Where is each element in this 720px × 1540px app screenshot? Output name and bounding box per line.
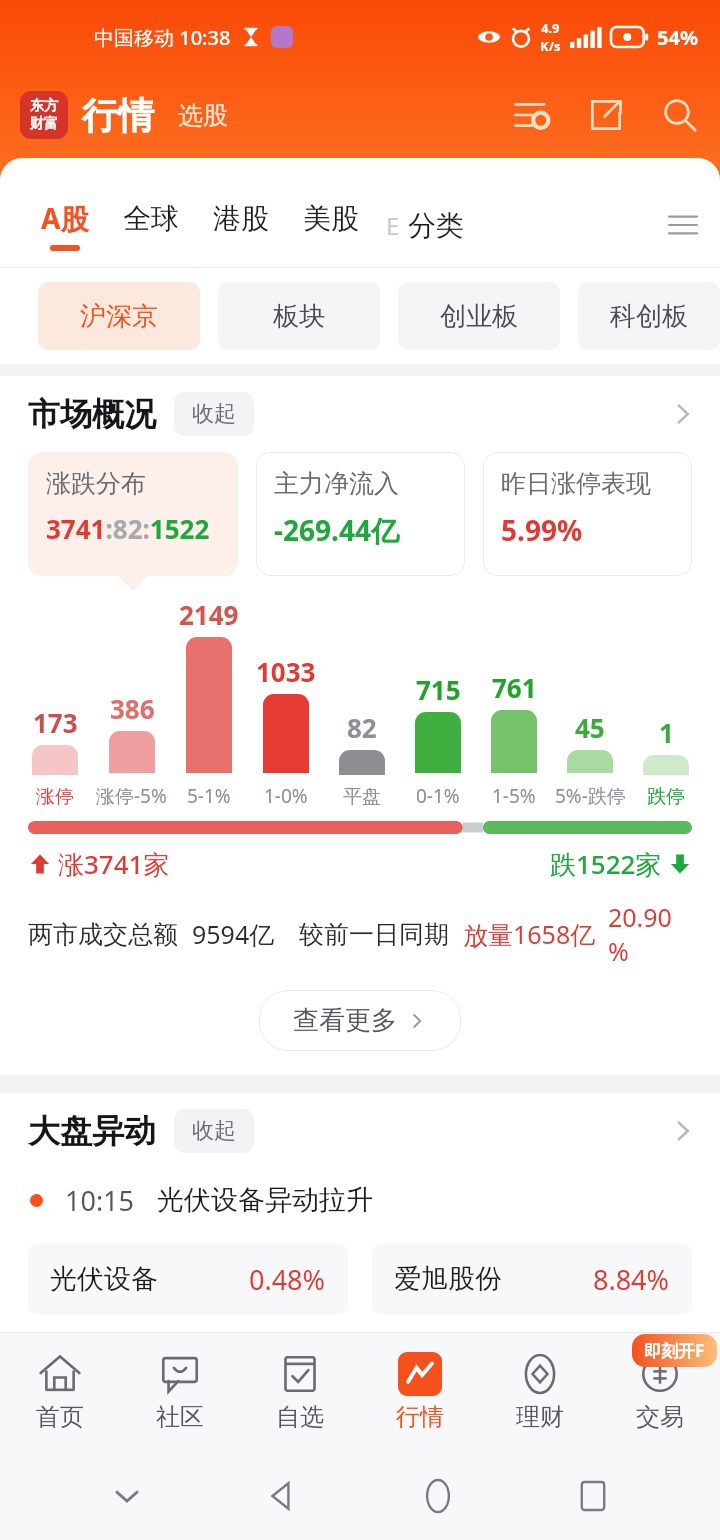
button[interactable]: 美股: [286, 182, 376, 268]
staticText: 收起: [192, 400, 236, 428]
staticText: 较前一日同期: [299, 919, 449, 950]
staticText: 1: [659, 715, 674, 750]
staticText: 0-1%: [416, 783, 460, 809]
button[interactable]: 自选: [240, 1332, 360, 1452]
staticText: 5.99%: [501, 511, 583, 549]
button[interactable]: E: [376, 208, 474, 243]
staticText: 行情: [396, 1402, 444, 1432]
button[interactable]: 10:15: [0, 1169, 720, 1231]
button[interactable]: 收起: [174, 392, 254, 436]
staticText: 东方: [30, 97, 58, 115]
staticText: 715: [416, 672, 461, 707]
button[interactable]: Collapse: [98, 1467, 156, 1525]
staticText: 1-5%: [492, 783, 536, 809]
staticText: 科创板: [610, 300, 688, 333]
staticText: 跌停: [647, 785, 685, 809]
button[interactable]: 科创板: [578, 282, 720, 350]
staticText: 0.48%: [249, 1261, 326, 1298]
staticText: 45: [575, 710, 605, 745]
staticText: 54%: [657, 24, 698, 51]
button[interactable]: 选股: [178, 100, 228, 131]
button[interactable]: A股: [24, 182, 106, 268]
staticText: 涨跌分布: [46, 468, 146, 499]
staticText: 理财: [516, 1402, 564, 1432]
button[interactable]: 板块: [218, 282, 380, 350]
button[interactable]: 创业板: [398, 282, 560, 350]
button[interactable]: 主力净流入: [256, 452, 465, 576]
other: Open 大盘异动: [668, 1116, 698, 1146]
staticText: 光伏设备异动拉升: [157, 1183, 373, 1217]
button[interactable]: 收起: [174, 1109, 254, 1153]
staticText: 1033: [256, 654, 316, 689]
staticText: 收起: [192, 1117, 236, 1145]
button[interactable]: 大盘异动: [0, 1093, 720, 1169]
button[interactable]: 昨日涨停表现: [483, 452, 692, 576]
button[interactable]: 港股: [196, 182, 286, 268]
staticText: 中国移动 10:38: [94, 24, 231, 51]
staticText: 即刻开F: [644, 1339, 705, 1362]
staticText: 5%-跌停: [555, 783, 626, 809]
staticText: 爱旭股份: [394, 1262, 502, 1296]
staticText: 大盘异动: [28, 1111, 156, 1151]
button[interactable]: 交易: [600, 1332, 720, 1452]
staticText: 沪深京: [80, 300, 158, 333]
staticText: 交易: [636, 1402, 684, 1432]
staticText: 板块: [273, 300, 325, 333]
staticText: 港股: [213, 201, 269, 236]
other: Open 市场概况: [668, 399, 698, 429]
button[interactable]: 首页: [0, 1332, 120, 1452]
staticText: 查看更多: [293, 1004, 397, 1037]
staticText: 9594亿: [192, 917, 275, 951]
button[interactable]: Filter settings: [506, 89, 558, 141]
staticText: 平盘: [343, 785, 381, 809]
button[interactable]: 全球: [106, 182, 196, 268]
button[interactable]: Recents: [564, 1467, 622, 1525]
staticText: 全球: [123, 201, 179, 236]
staticText: 两市成交总额: [28, 919, 178, 950]
staticText: 光伏设备: [50, 1262, 158, 1296]
button[interactable]: Share: [580, 89, 632, 141]
staticText: 3741:82:1522: [46, 511, 210, 546]
staticText: 社区: [156, 1402, 204, 1432]
staticText: 173: [33, 705, 78, 740]
button[interactable]: 东方: [20, 91, 68, 139]
staticText: 5-1%: [187, 783, 231, 809]
button[interactable]: 社区: [120, 1332, 240, 1452]
staticText: 市场概况: [28, 394, 156, 434]
button[interactable]: 理财: [480, 1332, 600, 1452]
button[interactable]: 查看更多: [259, 990, 461, 1051]
staticText: 1-0%: [264, 783, 308, 809]
staticText: A股: [41, 199, 89, 237]
button[interactable]: 涨跌分布: [28, 452, 238, 576]
staticText: 首页: [36, 1402, 84, 1432]
staticText: 主力净流入: [274, 468, 399, 499]
button[interactable]: 市场概况: [0, 376, 720, 452]
button[interactable]: 行情: [82, 93, 154, 138]
button[interactable]: More categories: [658, 200, 708, 250]
button[interactable]: 沪深京: [38, 282, 200, 350]
staticText: 4.9: [541, 19, 560, 37]
staticText: 涨停: [36, 785, 74, 809]
staticText: 8.84%: [593, 1261, 670, 1298]
staticText: 82: [347, 710, 377, 745]
staticText: 涨停-5%: [96, 783, 167, 809]
staticText: 财富: [30, 115, 58, 133]
staticText: 自选: [276, 1402, 324, 1432]
staticText: 昨日涨停表现: [501, 468, 651, 499]
staticText: 创业板: [440, 300, 518, 333]
button[interactable]: 爱旭股份: [372, 1243, 692, 1315]
staticText: 2149: [179, 597, 239, 632]
button[interactable]: Back: [253, 1467, 311, 1525]
button[interactable]: Home: [409, 1467, 467, 1525]
staticText: 分类: [408, 208, 464, 243]
staticText: K/s: [540, 37, 561, 55]
staticText: 761: [492, 670, 537, 705]
staticText: 跌1522家: [550, 846, 662, 882]
button[interactable]: 行情: [360, 1332, 480, 1452]
button[interactable]: 光伏设备: [28, 1243, 348, 1315]
staticText: 386: [110, 691, 155, 726]
staticText: 10:15: [65, 1182, 135, 1219]
staticText: -269.44亿: [274, 511, 399, 549]
staticText: 放量1658亿: [463, 917, 596, 951]
button[interactable]: Search: [654, 89, 706, 141]
